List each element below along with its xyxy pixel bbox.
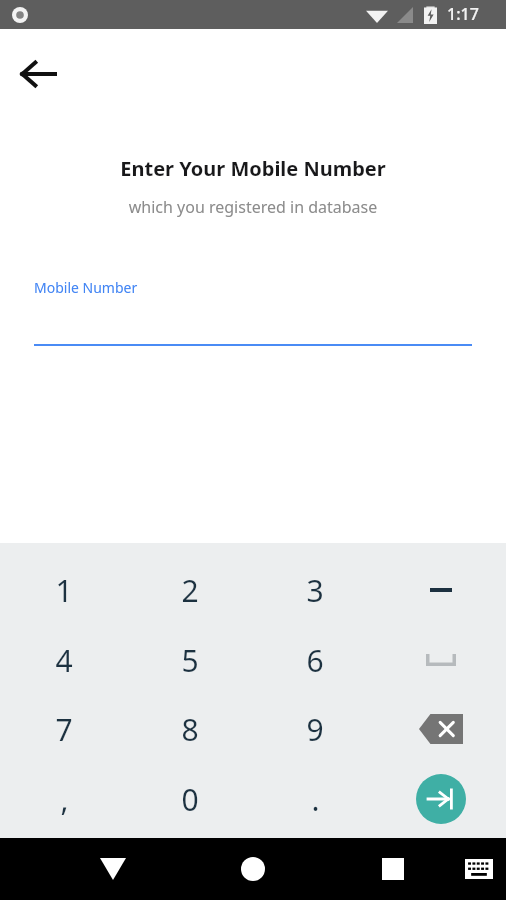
button[interactable]: Back [78, 844, 148, 894]
staticText: 5 [181, 640, 199, 681]
button[interactable]: 8 [128, 694, 252, 764]
button[interactable]: 7 [2, 694, 126, 764]
staticText: 4 [55, 640, 73, 681]
staticText: 8 [181, 709, 199, 750]
staticText: Enter Your Mobile Number [0, 155, 506, 182]
button[interactable]: Recent apps [358, 844, 428, 894]
staticText: 9 [306, 709, 324, 750]
staticText: Mobile Number [34, 278, 138, 297]
button[interactable]: 9 [253, 694, 377, 764]
button[interactable]: Dash [379, 555, 503, 625]
button[interactable]: Back [8, 44, 68, 104]
button[interactable]: 2 [128, 555, 252, 625]
button[interactable]: Home [218, 844, 288, 894]
button[interactable]: Backspace [379, 694, 503, 764]
button[interactable]: 0 [128, 764, 252, 834]
button[interactable]: 4 [2, 625, 126, 695]
staticText: 1 [55, 570, 73, 611]
staticText: . [311, 779, 320, 820]
button[interactable]: Enter [379, 764, 503, 834]
button[interactable]: 3 [253, 555, 377, 625]
button[interactable]: 5 [128, 625, 252, 695]
staticText: 2 [181, 570, 199, 611]
button[interactable]: . [253, 764, 377, 834]
button[interactable]: , [2, 764, 126, 834]
button[interactable]: Mobile Number [34, 278, 472, 346]
button[interactable]: Switch keyboard [452, 846, 506, 892]
staticText: 3 [306, 570, 324, 611]
staticText: 7 [55, 709, 73, 750]
button[interactable]: 1 [2, 555, 126, 625]
staticText: which you registered in database [0, 196, 506, 218]
staticText: 0 [181, 779, 199, 820]
button[interactable]: Space [379, 625, 503, 695]
staticText: 6 [306, 640, 324, 681]
staticText: , [60, 779, 69, 820]
button[interactable]: 6 [253, 625, 377, 695]
staticText: 1:17 [447, 3, 479, 25]
